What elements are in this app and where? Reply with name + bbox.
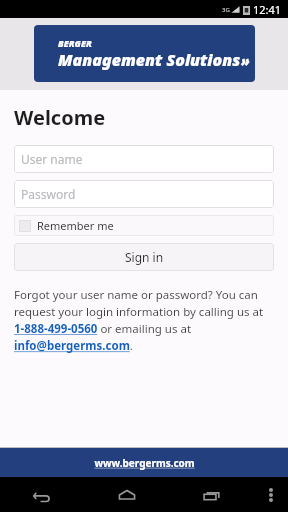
button[interactable]: BERGER [34,25,255,82]
button[interactable]: Forgot your user name or password? You c… [14,287,274,354]
button[interactable]: Password [14,180,274,208]
button[interactable]: www.bergerms.com [0,448,288,477]
button[interactable]: More options [254,477,288,512]
staticText: Sign in [125,249,164,265]
staticText: Password [21,186,76,202]
staticText: 3G [222,6,230,14]
staticText: » [241,51,250,70]
button[interactable]: User name [14,145,274,173]
staticText: 12:41 [253,2,282,17]
staticText: Remember me [37,218,114,233]
button[interactable]: Home [84,477,169,512]
staticText: Management Solutions [58,49,241,71]
button[interactable]: Back [0,477,84,512]
staticText: BERGER [58,37,92,49]
staticText: User name [21,151,83,167]
button[interactable]: Remember me [14,215,274,236]
button[interactable]: Recent apps [169,477,254,512]
button[interactable]: Sign in [14,243,274,271]
staticText: www.bergerms.com [94,456,195,470]
staticText: Welcome [14,104,106,131]
